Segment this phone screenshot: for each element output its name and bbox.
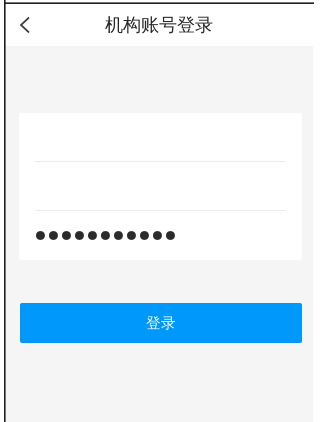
staticText: 登录 (146, 314, 176, 332)
button[interactable]: Back (5, 3, 45, 47)
staticText: 机构账号登录 (105, 14, 213, 36)
button[interactable]: 登录 (20, 303, 302, 343)
